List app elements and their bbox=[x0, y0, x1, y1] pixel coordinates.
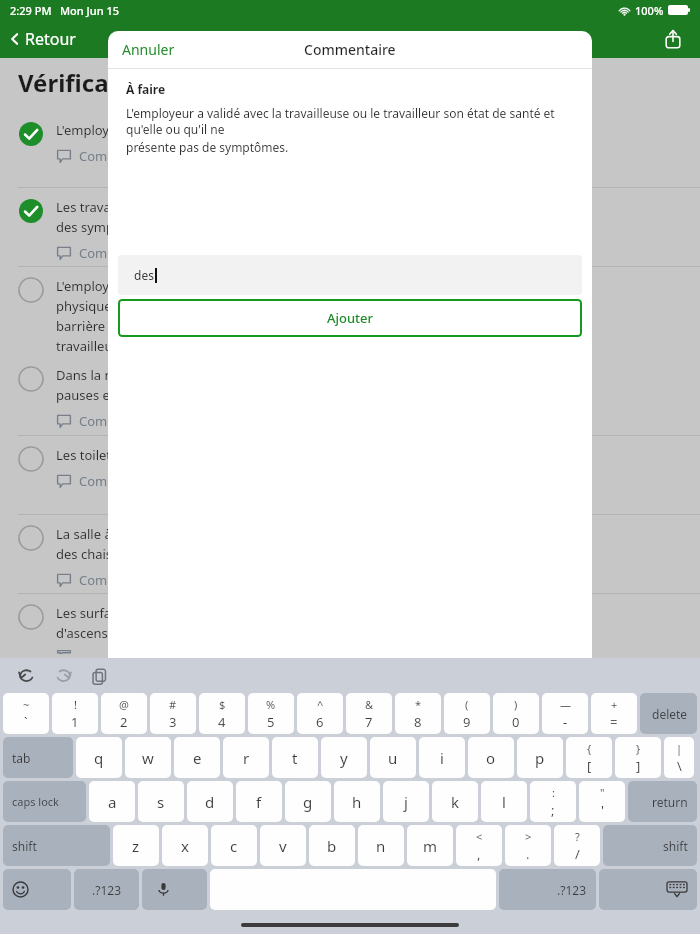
staticText: ^ bbox=[317, 697, 324, 712]
button[interactable]: Commentaire bbox=[56, 650, 163, 654]
button[interactable]: v bbox=[260, 825, 306, 866]
button[interactable]: caps lock bbox=[3, 781, 86, 822]
button[interactable]: < bbox=[456, 825, 502, 866]
staticText: shift bbox=[12, 838, 37, 854]
button[interactable]: y bbox=[321, 737, 367, 778]
button[interactable]: h bbox=[334, 781, 380, 822]
staticText: des chaises, etc.) bbox=[56, 545, 159, 563]
button[interactable]: s bbox=[138, 781, 184, 822]
button[interactable]: shift bbox=[3, 825, 110, 866]
button[interactable]: delete bbox=[640, 693, 697, 734]
button[interactable]: u bbox=[370, 737, 416, 778]
button[interactable]: { bbox=[566, 737, 612, 778]
button[interactable]: % bbox=[248, 693, 294, 734]
staticText: Ajouter bbox=[327, 309, 374, 327]
staticText: 3 bbox=[169, 713, 177, 731]
button[interactable]: Paste bbox=[84, 661, 114, 691]
button[interactable]: Hide keyboard bbox=[599, 869, 697, 910]
staticText: 1 bbox=[71, 713, 79, 731]
staticText: 5 bbox=[267, 713, 275, 731]
button[interactable]: n bbox=[358, 825, 404, 866]
button[interactable]: shift bbox=[603, 825, 697, 866]
staticText: physique minimale de 2 mètres, sinon d'e… bbox=[56, 297, 407, 315]
button[interactable]: t bbox=[272, 737, 318, 778]
staticText: q bbox=[94, 748, 104, 768]
button[interactable]: b bbox=[309, 825, 355, 866]
button[interactable]: Annuler bbox=[122, 31, 175, 68]
button[interactable]: | bbox=[664, 737, 694, 778]
button[interactable]: Retour bbox=[8, 20, 76, 58]
button[interactable]: a bbox=[89, 781, 135, 822]
button[interactable]: Share bbox=[660, 26, 686, 52]
button[interactable]: des bbox=[118, 255, 582, 295]
staticText: ' bbox=[601, 801, 604, 819]
button[interactable]: " bbox=[579, 781, 625, 822]
staticText: Mon Jun 15 bbox=[60, 3, 120, 18]
button[interactable]: tab bbox=[3, 737, 73, 778]
button[interactable]: Dictation bbox=[142, 869, 207, 910]
button[interactable]: # bbox=[150, 693, 196, 734]
button[interactable]: return bbox=[628, 781, 697, 822]
button[interactable]: c bbox=[211, 825, 257, 866]
button[interactable]: Commentaire bbox=[56, 472, 163, 490]
button[interactable]: ) bbox=[493, 693, 539, 734]
button[interactable]: ( bbox=[444, 693, 490, 734]
button[interactable]: ~ bbox=[3, 693, 49, 734]
button[interactable]: Commentaire bbox=[56, 571, 163, 589]
button[interactable]: $ bbox=[199, 693, 245, 734]
button[interactable]: d bbox=[187, 781, 233, 822]
staticText: 0 bbox=[512, 713, 520, 731]
staticText: L'employeur a mis en place des mesures l… bbox=[56, 277, 435, 295]
button[interactable]: z bbox=[113, 825, 159, 866]
staticText: 8 bbox=[414, 713, 422, 731]
button[interactable]: ! bbox=[52, 693, 98, 734]
button[interactable]: g bbox=[285, 781, 331, 822]
button[interactable]: k bbox=[432, 781, 478, 822]
staticText: Commentaire bbox=[79, 571, 163, 589]
button[interactable]: & bbox=[346, 693, 392, 734]
button[interactable]: + bbox=[591, 693, 637, 734]
button[interactable]: Redo bbox=[48, 661, 78, 691]
button[interactable]: } bbox=[615, 737, 661, 778]
button[interactable]: Commentaire bbox=[56, 147, 163, 165]
button[interactable]: e bbox=[174, 737, 220, 778]
button[interactable]: — bbox=[542, 693, 588, 734]
button[interactable]: j bbox=[383, 781, 429, 822]
button[interactable]: Commentaire bbox=[56, 244, 163, 262]
staticText: ( bbox=[465, 697, 469, 712]
button[interactable]: x bbox=[162, 825, 208, 866]
button[interactable]: ? bbox=[554, 825, 600, 866]
button[interactable]: m bbox=[407, 825, 453, 866]
button[interactable]: l bbox=[481, 781, 527, 822]
staticText: ` bbox=[24, 713, 28, 731]
button[interactable]: Ajouter bbox=[118, 299, 582, 337]
staticText: Commentaire bbox=[79, 147, 163, 165]
staticText: 6 bbox=[316, 713, 324, 731]
staticText: h bbox=[352, 792, 362, 812]
button[interactable]: p bbox=[517, 737, 563, 778]
staticText: m bbox=[423, 836, 438, 856]
button[interactable]: i bbox=[419, 737, 465, 778]
staticText: g bbox=[303, 792, 313, 812]
staticText: Commentaire bbox=[79, 244, 163, 262]
staticText: ) bbox=[514, 697, 518, 712]
button[interactable]: * bbox=[395, 693, 441, 734]
button[interactable]: .?123 bbox=[499, 869, 596, 910]
button[interactable]: q bbox=[76, 737, 122, 778]
button[interactable]: : bbox=[530, 781, 576, 822]
button[interactable]: ^ bbox=[297, 693, 343, 734]
staticText: { bbox=[587, 741, 592, 756]
button[interactable]: r bbox=[223, 737, 269, 778]
button[interactable]: Emoji bbox=[3, 869, 71, 910]
button[interactable]: w bbox=[125, 737, 171, 778]
staticText: f bbox=[256, 792, 262, 812]
staticText: présente pas de symptômes. bbox=[126, 139, 289, 155]
button[interactable]: f bbox=[236, 781, 282, 822]
button[interactable]: > bbox=[505, 825, 551, 866]
button[interactable]: o bbox=[468, 737, 514, 778]
button[interactable]: Commentaire bbox=[56, 412, 163, 430]
button[interactable]: @ bbox=[101, 693, 147, 734]
button[interactable]: .?123 bbox=[74, 869, 139, 910]
button[interactable]: Undo bbox=[12, 661, 42, 691]
